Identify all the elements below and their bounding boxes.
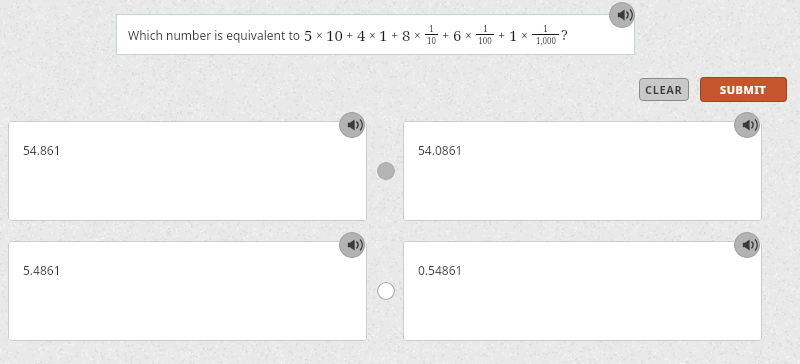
- staticText: +: [442, 26, 450, 44]
- staticText: ×: [414, 27, 421, 43]
- staticText: 1: [429, 23, 434, 34]
- button[interactable]: 0.54861: [403, 241, 762, 341]
- button[interactable]: Which number is equivalent to: [116, 14, 635, 55]
- staticText: SUBMIT: [720, 82, 767, 97]
- staticText: 1,000: [536, 35, 556, 46]
- button[interactable]: 54.861: [8, 121, 367, 221]
- staticText: 100: [478, 35, 492, 46]
- button[interactable]: Read answer 54.861 aloud: [339, 112, 365, 138]
- staticText: CLEAR: [645, 82, 683, 97]
- button[interactable]: Read answer 5.4861 aloud: [339, 232, 365, 258]
- staticText: Which number is equivalent to: [128, 27, 304, 43]
- staticText: ×: [521, 27, 528, 43]
- staticText: ×: [465, 27, 472, 43]
- staticText: 5: [304, 25, 313, 45]
- staticText: +: [391, 26, 399, 44]
- staticText: 10: [427, 35, 436, 46]
- button[interactable]: Select option: [377, 282, 395, 300]
- staticText: 0.54861: [418, 262, 463, 278]
- button[interactable]: Selected option: [377, 162, 395, 180]
- button[interactable]: 5.4861: [8, 241, 367, 341]
- staticText: ×: [369, 27, 376, 43]
- staticText: 1: [483, 23, 488, 34]
- button[interactable]: 54.0861: [403, 121, 762, 221]
- staticText: 4: [357, 25, 366, 45]
- staticText: 5.4861: [23, 262, 61, 278]
- button[interactable]: CLEAR: [639, 78, 689, 101]
- button[interactable]: Read answer 54.0861 aloud: [734, 112, 760, 138]
- staticText: 1: [543, 23, 548, 34]
- staticText: ×: [316, 27, 323, 43]
- button[interactable]: SUBMIT: [700, 77, 787, 102]
- staticText: +: [346, 26, 354, 44]
- staticText: 1: [379, 25, 388, 45]
- button[interactable]: Read answer 0.54861 aloud: [734, 232, 760, 258]
- staticText: +: [498, 26, 506, 44]
- staticText: 10: [326, 25, 343, 45]
- staticText: 8: [402, 25, 411, 45]
- staticText: 6: [453, 25, 462, 45]
- staticText: 54.861: [23, 142, 61, 158]
- staticText: 1: [509, 25, 518, 45]
- button[interactable]: Read question aloud: [609, 2, 635, 28]
- staticText: ?: [561, 25, 568, 44]
- staticText: 54.0861: [418, 142, 463, 158]
